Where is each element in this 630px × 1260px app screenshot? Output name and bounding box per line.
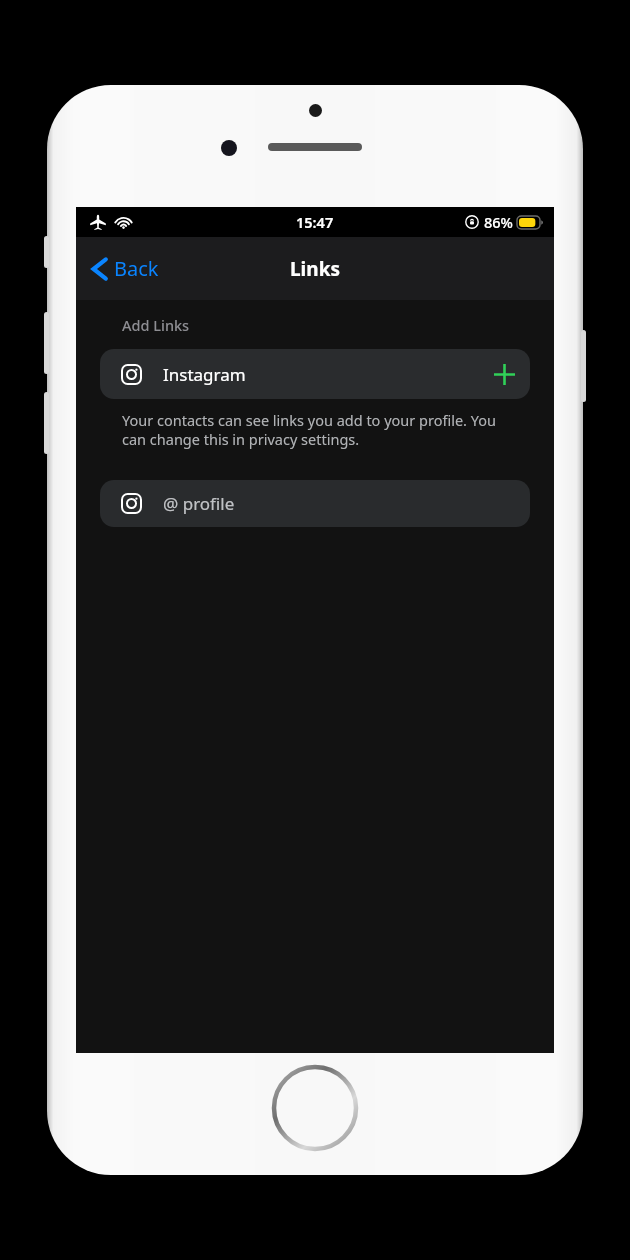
staticText: Instagram xyxy=(163,363,246,386)
other: Add Instagram link xyxy=(482,352,526,396)
staticText: @ profile xyxy=(163,492,235,515)
staticText: Add Links xyxy=(122,315,190,335)
staticText: Links xyxy=(290,256,340,282)
button[interactable]: @ profile xyxy=(100,480,530,527)
button[interactable]: Instagram xyxy=(100,349,530,399)
staticText: 15:47 xyxy=(296,212,334,232)
staticText: Back xyxy=(114,255,159,282)
button[interactable]: Back xyxy=(86,249,165,288)
staticText: Your contacts can see links you add to y… xyxy=(122,410,496,449)
staticText: 86% xyxy=(484,212,513,232)
